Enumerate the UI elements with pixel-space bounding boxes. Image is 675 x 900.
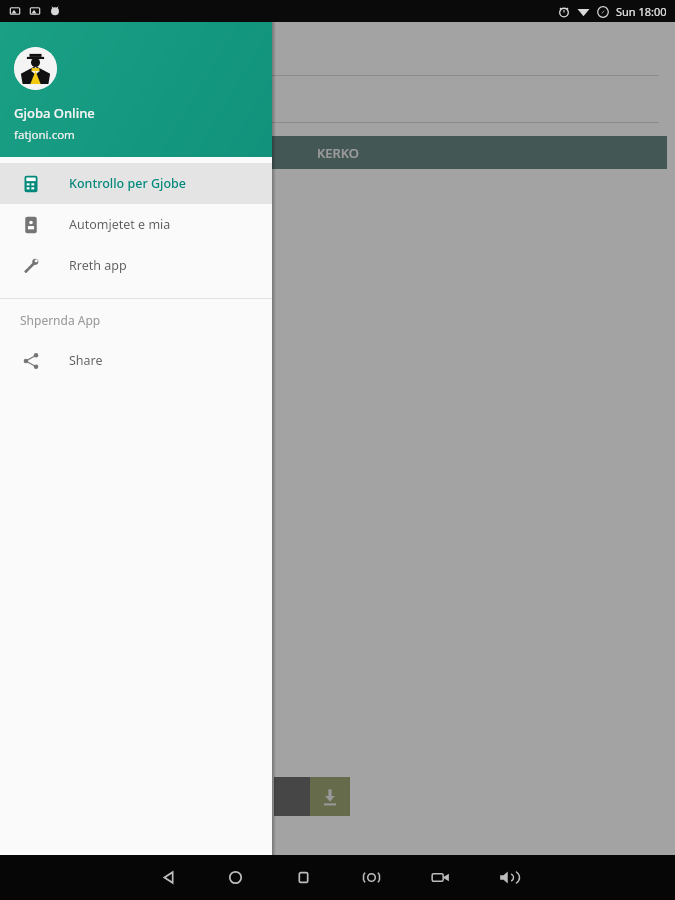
button[interactable]: Rreth app	[0, 245, 272, 286]
button[interactable]: Navigation button	[421, 858, 459, 896]
button[interactable]: Share	[0, 340, 272, 381]
staticText: fatjoni.com	[14, 127, 75, 143]
staticText: Share	[69, 352, 103, 369]
button[interactable]	[0, 22, 675, 877]
staticText: KERKO	[317, 144, 359, 162]
button[interactable]: Automjetet e mia	[0, 204, 272, 245]
staticText: Sun 18:00	[616, 4, 667, 19]
button[interactable]: KERKO	[8, 136, 667, 169]
button[interactable]: Navigation button	[352, 858, 390, 896]
button[interactable]: Profile picture	[14, 47, 57, 90]
staticText: Rreth app	[69, 257, 127, 274]
button[interactable]: Navigation button	[216, 858, 254, 896]
button[interactable]: Navigation button	[489, 858, 527, 896]
button[interactable]: Navigation button	[284, 858, 322, 896]
staticText: Gjoba Online	[14, 104, 95, 122]
button[interactable]: Kontrollo per Gjobe	[0, 163, 272, 204]
staticText: Shpernda App	[20, 312, 101, 328]
staticText: Automjetet e mia	[69, 216, 171, 233]
button[interactable]: Download	[310, 777, 350, 816]
button[interactable]: Navigation button	[149, 858, 187, 896]
staticText: Kontrollo per Gjobe	[69, 175, 186, 192]
